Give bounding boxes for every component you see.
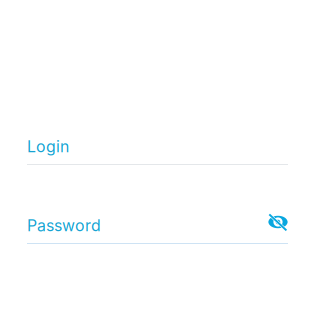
staticText: Password — [27, 216, 101, 235]
button[interactable]: Password — [27, 217, 288, 244]
button[interactable]: Login — [27, 138, 288, 165]
button[interactable]: Show password — [268, 213, 288, 231]
staticText: Login — [27, 137, 69, 156]
